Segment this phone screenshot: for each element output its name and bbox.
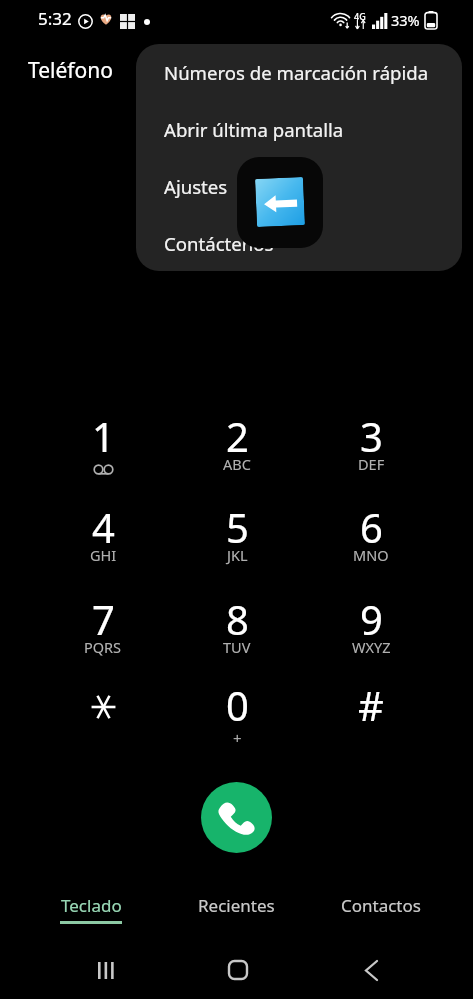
button[interactable]: Call [201, 782, 272, 853]
button[interactable]: Recents [86, 950, 126, 990]
staticText: Contactos [341, 894, 421, 917]
staticText: 4 [92, 500, 115, 554]
staticText: 2 [226, 409, 249, 463]
staticText: Abrir última pantalla [164, 117, 344, 142]
button[interactable]: Números de marcación rápida [136, 44, 462, 101]
button[interactable] [43, 670, 163, 754]
staticText: TUV [223, 637, 251, 657]
staticText: 9 [360, 592, 383, 646]
button[interactable]: 0 [177, 670, 297, 754]
staticText: ABC [223, 454, 251, 474]
staticText: 5:32 [38, 7, 72, 30]
button[interactable]: 9 [311, 584, 431, 668]
staticText: JKL [227, 545, 248, 565]
button[interactable]: 8 [177, 584, 297, 668]
staticText: 8 [226, 592, 249, 646]
staticText: 7 [92, 592, 115, 646]
staticText: 1 [92, 409, 115, 463]
button[interactable]: Back [351, 950, 391, 990]
button[interactable]: 1 [43, 401, 163, 485]
staticText: 6 [360, 500, 383, 554]
button[interactable]: Abrir última pantalla [136, 101, 462, 158]
staticText: Recientes [198, 894, 275, 917]
staticText: 4G [354, 10, 366, 22]
button[interactable]: Ajustes [136, 158, 462, 215]
staticText: Teclado [61, 894, 122, 917]
button[interactable]: Contactos [315, 894, 447, 938]
button[interactable]: 3 [311, 401, 431, 485]
staticText: 5 [226, 500, 249, 554]
button[interactable]: Teclado [25, 894, 157, 938]
button[interactable]: Contáctenos [136, 215, 462, 271]
staticText: 3 [360, 409, 383, 463]
staticText: WXYZ [352, 637, 391, 657]
staticText: 0 [226, 678, 249, 732]
button[interactable]: 6 [311, 492, 431, 576]
staticText: Teléfono [28, 56, 113, 85]
staticText: Ajustes [164, 174, 228, 199]
staticText: + [233, 728, 242, 748]
staticText: 33% [391, 10, 420, 30]
button[interactable]: 4 [43, 492, 163, 576]
staticText: MNO [353, 545, 389, 565]
staticText: Contáctenos [164, 231, 274, 256]
staticText: GHI [90, 545, 117, 565]
button[interactable]: 7 [43, 584, 163, 668]
staticText: DEF [358, 454, 385, 474]
button[interactable]: Recientes [170, 894, 302, 938]
staticText: # [358, 678, 384, 732]
staticText: PQRS [84, 637, 122, 657]
button[interactable]: # [311, 670, 431, 754]
button[interactable]: Back [237, 157, 323, 248]
staticText: Números de marcación rápida [164, 60, 429, 85]
button[interactable]: Home [218, 950, 258, 990]
button[interactable]: 5 [177, 492, 297, 576]
button[interactable]: 2 [177, 401, 297, 485]
